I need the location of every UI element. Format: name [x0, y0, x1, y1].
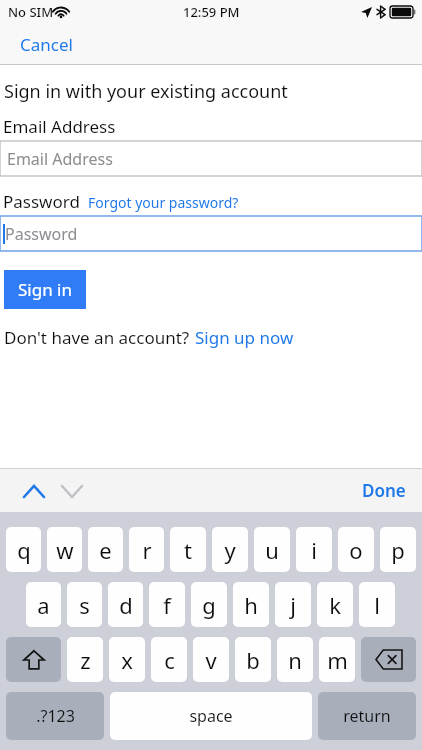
- button[interactable]: b: [235, 637, 271, 682]
- staticText: p: [391, 535, 405, 565]
- button[interactable]: Password: [0, 216, 422, 251]
- staticText: c: [164, 645, 175, 675]
- button[interactable]: .?123: [6, 692, 104, 740]
- staticText: i: [311, 535, 317, 565]
- button[interactable]: k: [317, 582, 353, 627]
- button[interactable]: x: [109, 637, 145, 682]
- button[interactable]: j: [275, 582, 311, 627]
- button[interactable]: o: [338, 527, 374, 572]
- button[interactable]: y: [212, 527, 248, 572]
- button[interactable]: l: [359, 582, 395, 627]
- button[interactable]: c: [151, 637, 187, 682]
- staticText: Password: [3, 190, 80, 213]
- staticText: v: [205, 645, 217, 675]
- staticText: .?123: [36, 705, 75, 727]
- staticText: q: [17, 535, 31, 565]
- button[interactable]: t: [170, 527, 206, 572]
- staticText: Forgot your password?: [88, 193, 239, 212]
- staticText: f: [163, 590, 171, 620]
- button[interactable]: f: [149, 582, 185, 627]
- button[interactable]: Done: [346, 471, 422, 510]
- button[interactable]: w: [47, 527, 82, 572]
- button[interactable]: g: [191, 582, 227, 627]
- button[interactable]: i: [296, 527, 332, 572]
- button[interactable]: z: [67, 637, 103, 682]
- button[interactable]: v: [193, 637, 229, 682]
- staticText: u: [265, 535, 279, 565]
- button[interactable]: e: [88, 527, 123, 572]
- button[interactable]: return: [318, 692, 416, 740]
- button[interactable]: u: [254, 527, 290, 572]
- button[interactable]: Next field: [52, 471, 92, 511]
- staticText: Sign in: [18, 278, 72, 301]
- button[interactable]: h: [233, 582, 269, 627]
- staticText: y: [224, 535, 236, 565]
- button[interactable]: r: [129, 527, 164, 572]
- staticText: e: [99, 535, 112, 565]
- button[interactable]: Sign in: [4, 270, 86, 309]
- staticText: b: [246, 645, 260, 675]
- staticText: w: [56, 535, 74, 565]
- button[interactable]: Cancel: [0, 27, 93, 62]
- staticText: g: [202, 590, 216, 620]
- staticText: Cancel: [20, 33, 73, 56]
- staticText: m: [327, 645, 348, 675]
- staticText: h: [244, 590, 258, 620]
- staticText: Done: [362, 479, 406, 502]
- button[interactable]: Forgot your password?: [88, 193, 239, 213]
- staticText: Sign up now: [195, 326, 294, 349]
- button[interactable]: Shift: [6, 637, 61, 682]
- staticText: l: [374, 590, 380, 620]
- staticText: s: [79, 590, 90, 620]
- button[interactable]: Backspace: [361, 637, 416, 682]
- staticText: n: [288, 645, 302, 675]
- staticText: Password: [5, 223, 78, 245]
- staticText: x: [121, 645, 133, 675]
- button[interactable]: d: [108, 582, 143, 627]
- staticText: Email Address: [3, 115, 116, 138]
- button[interactable]: space: [110, 692, 312, 740]
- staticText: No SIM: [8, 3, 54, 21]
- button[interactable]: q: [6, 527, 41, 572]
- button[interactable]: s: [67, 582, 102, 627]
- button[interactable]: p: [380, 527, 416, 572]
- button[interactable]: n: [277, 637, 313, 682]
- staticText: o: [349, 535, 363, 565]
- button[interactable]: Sign up now: [195, 326, 294, 349]
- button[interactable]: Previous field: [14, 471, 54, 511]
- staticText: t: [184, 535, 192, 565]
- button[interactable]: a: [26, 582, 61, 627]
- button[interactable]: Email Address: [0, 141, 422, 176]
- staticText: 12:59 PM: [183, 3, 240, 21]
- staticText: d: [119, 590, 133, 620]
- staticText: return: [343, 705, 391, 727]
- staticText: Sign in with your existing account: [4, 79, 288, 104]
- staticText: r: [142, 535, 152, 565]
- button[interactable]: m: [319, 637, 355, 682]
- staticText: k: [329, 590, 341, 620]
- staticText: j: [290, 590, 296, 620]
- staticText: Don't have an account?: [4, 326, 190, 349]
- staticText: Email Address: [7, 148, 113, 170]
- staticText: a: [37, 590, 50, 620]
- staticText: z: [80, 645, 91, 675]
- staticText: space: [189, 705, 233, 727]
